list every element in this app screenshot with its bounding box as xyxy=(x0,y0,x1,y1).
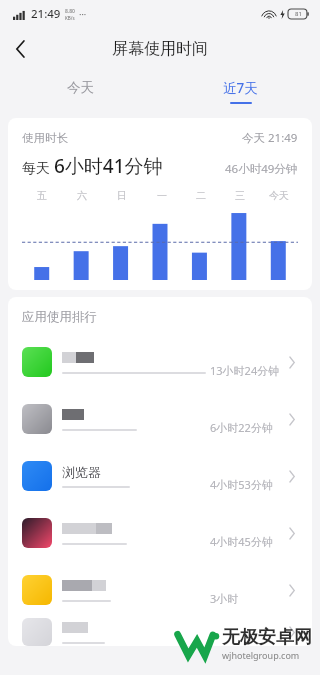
staticText: 21:49 xyxy=(31,6,61,22)
staticText: 每天 xyxy=(22,158,54,177)
staticText: 三 xyxy=(235,189,245,202)
staticText: 13小时24分钟 xyxy=(210,363,280,378)
staticText: 六 xyxy=(77,189,87,202)
button[interactable]: 6小时22分钟 xyxy=(8,390,312,447)
staticText: 46小时49分钟 xyxy=(225,161,298,177)
staticText: 今天 21:49 xyxy=(242,130,298,146)
staticText: 日 xyxy=(117,189,127,202)
staticText: 4小时45分钟 xyxy=(210,534,273,549)
button[interactable]: 浏览器 xyxy=(8,447,312,504)
staticText: wjhotelgroup.com xyxy=(222,649,300,661)
staticText: 近7天 xyxy=(223,79,258,97)
button[interactable]: 4小时45分钟 xyxy=(8,504,312,561)
staticText: 今天 xyxy=(67,79,94,96)
staticText: 五 xyxy=(37,189,47,202)
staticText: ··· xyxy=(79,8,87,20)
staticText: 今天 xyxy=(269,189,289,202)
staticText: 屏幕使用时间 xyxy=(112,39,208,59)
button[interactable]: Back xyxy=(0,29,40,69)
staticText: KB/s xyxy=(65,15,75,21)
button[interactable]: 13小时24分钟 xyxy=(8,333,312,390)
button[interactable]: 3小时 xyxy=(8,561,312,618)
staticText: 8.80 xyxy=(65,8,75,15)
staticText: 6小时22分钟 xyxy=(210,420,273,435)
button[interactable] xyxy=(8,618,312,646)
staticText: 81 xyxy=(295,10,302,18)
staticText: 3小时 xyxy=(210,591,239,606)
staticText: 应用使用排行 xyxy=(22,309,97,325)
staticText: 使用时长 xyxy=(22,131,68,145)
staticText: 无极安卓网 xyxy=(222,626,312,649)
staticText: 6小时41分钟 xyxy=(54,153,163,179)
staticText: 二 xyxy=(196,189,206,202)
staticText: 浏览器 xyxy=(62,464,101,479)
button[interactable]: 今天 xyxy=(0,70,160,112)
staticText: 4小时53分钟 xyxy=(210,477,273,492)
button[interactable]: 近7天 xyxy=(160,70,320,112)
staticText: 一 xyxy=(157,189,167,202)
